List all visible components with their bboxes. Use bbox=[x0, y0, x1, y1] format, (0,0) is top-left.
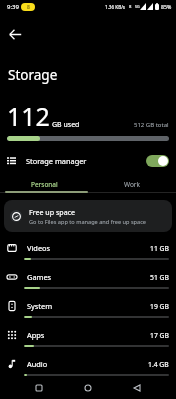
staticText: 8 bbox=[27, 4, 30, 11]
staticText: Personal bbox=[31, 180, 58, 189]
button[interactable]: Storage manager bbox=[0, 149, 176, 172]
staticText: GB used bbox=[52, 120, 80, 130]
button[interactable]: System bbox=[0, 297, 176, 325]
button[interactable]: Recents bbox=[29, 378, 49, 398]
staticText: Free up space bbox=[29, 207, 76, 217]
staticText: 85% bbox=[161, 3, 172, 10]
button[interactable]: Work bbox=[88, 176, 176, 192]
staticText: 8 bbox=[129, 4, 132, 10]
staticText: Go to Files app to manage and free up sp… bbox=[29, 218, 147, 226]
staticText: 1.36 KB/s bbox=[105, 4, 126, 10]
button[interactable]: Back bbox=[3, 22, 27, 46]
staticText: Games bbox=[27, 272, 52, 282]
button[interactable]: Audio bbox=[0, 355, 176, 383]
button[interactable]: Back bbox=[127, 378, 147, 398]
staticText: 19 GB bbox=[150, 302, 169, 311]
staticText: 512 GB total bbox=[134, 121, 169, 129]
staticText: Storage manager bbox=[26, 156, 87, 166]
button[interactable]: Home bbox=[78, 378, 98, 398]
staticText: Audio bbox=[27, 359, 48, 369]
staticText: 11 GB bbox=[150, 244, 169, 253]
button[interactable]: Games bbox=[0, 268, 176, 296]
button[interactable]: Personal bbox=[0, 176, 88, 192]
staticText: 1.4 GB bbox=[148, 360, 169, 369]
staticText: 9:39 bbox=[7, 3, 19, 11]
button[interactable]: Free up space bbox=[4, 200, 172, 232]
staticText: 17 GB bbox=[150, 331, 169, 340]
button[interactable]: Videos bbox=[0, 239, 176, 267]
staticText: 51 GB bbox=[150, 273, 169, 282]
staticText: Apps bbox=[27, 330, 45, 340]
staticText: Storage bbox=[8, 66, 58, 84]
staticText: 5G bbox=[135, 4, 140, 9]
staticText: Videos bbox=[27, 243, 51, 253]
staticText: System bbox=[27, 301, 53, 311]
staticText: 112 bbox=[7, 99, 50, 133]
button[interactable]: Apps bbox=[0, 326, 176, 354]
staticText: Work bbox=[124, 180, 141, 189]
